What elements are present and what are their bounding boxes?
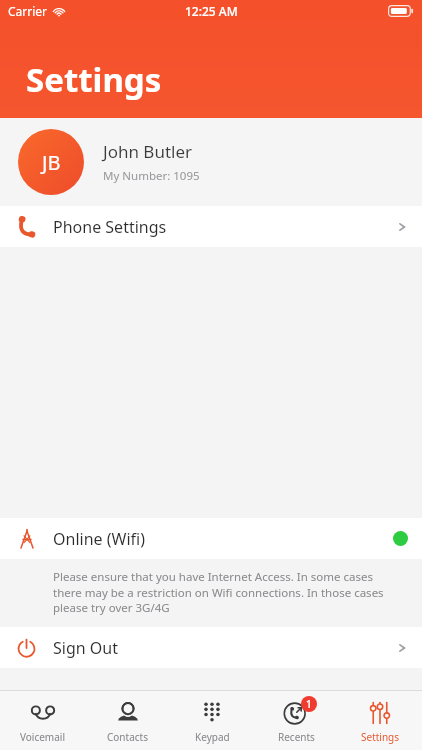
staticText: Settings	[26, 57, 162, 102]
staticText: Phone Settings	[53, 216, 167, 238]
button[interactable]: Settings	[338, 691, 422, 750]
other: Battery	[388, 5, 414, 17]
button[interactable]: JB	[0, 118, 422, 206]
staticText: Carrier	[8, 3, 48, 19]
staticText: Sign Out	[53, 637, 118, 659]
button[interactable]: Voicemail	[0, 691, 85, 750]
staticText: Please ensure that you have Internet Acc…	[53, 569, 392, 615]
button[interactable]: Keypad	[170, 691, 254, 750]
other: Connection status	[17, 529, 37, 549]
button[interactable]: Sign Out	[0, 627, 422, 668]
button[interactable]: 1	[254, 691, 338, 750]
staticText: 1	[306, 697, 312, 711]
staticText: Online (Wifi)	[53, 528, 145, 550]
staticText: 12:25 AM	[185, 3, 238, 19]
button[interactable]: Connection status	[0, 518, 422, 559]
other: Wifi	[53, 5, 65, 17]
staticText: My Number: 1095	[103, 168, 200, 184]
staticText: Voicemail	[20, 730, 65, 744]
staticText: John Butler	[103, 140, 193, 163]
button[interactable]: Phone Settings	[0, 206, 422, 247]
staticText: Recents	[278, 730, 315, 744]
other: Phone Settings	[16, 216, 38, 238]
staticText: JB	[42, 149, 61, 176]
other: Sign Out	[16, 637, 37, 658]
staticText: Contacts	[107, 730, 148, 744]
staticText: Keypad	[195, 730, 230, 744]
button[interactable]: Contacts	[85, 691, 170, 750]
staticText: Settings	[361, 730, 400, 744]
